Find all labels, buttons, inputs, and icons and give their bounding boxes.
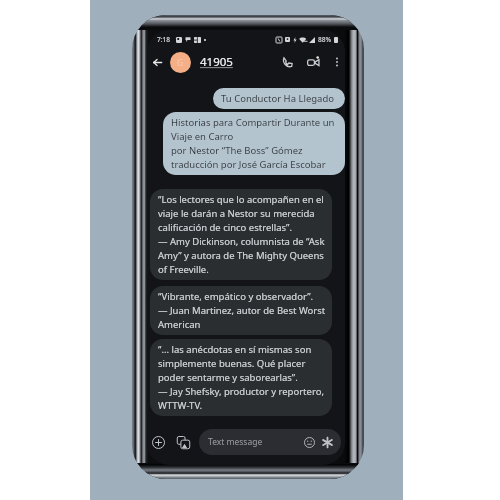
button[interactable]: Add attachment [148, 432, 168, 452]
button[interactable]: G [170, 52, 191, 73]
staticText: Text message [208, 436, 263, 448]
staticText: 41905 [200, 54, 233, 70]
staticText: “Vibrante, empático y observador”. — Jua… [158, 290, 327, 331]
button[interactable]: Text message [199, 429, 341, 455]
staticText: “... las anécdotas en sí mismas son simp… [158, 343, 327, 412]
staticText: G [177, 57, 184, 69]
button[interactable]: Historias para Compartir Durante un Viaj… [163, 112, 345, 175]
staticText: 88% [318, 35, 332, 44]
button[interactable]: “... las anécdotas en sí mismas son simp… [150, 339, 332, 416]
button[interactable]: Tu Conductor Ha Llegado [213, 88, 345, 109]
staticText: Tu Conductor Ha Llegado [221, 92, 335, 105]
staticText: Historias para Compartir Durante un Viaj… [171, 116, 337, 171]
button[interactable]: “Vibrante, empático y observador”. — Jua… [150, 286, 332, 335]
button[interactable]: Call [277, 52, 297, 72]
staticText: 7:18 [157, 35, 171, 44]
button[interactable]: “Los lectores que lo acompañen en el via… [150, 189, 332, 280]
button[interactable]: Gallery [173, 432, 193, 452]
button[interactable]: Back [148, 53, 166, 71]
staticText: “Los lectores que lo acompañen en el via… [158, 193, 327, 276]
button[interactable]: More options [329, 54, 345, 70]
button[interactable]: Video call [303, 52, 323, 72]
